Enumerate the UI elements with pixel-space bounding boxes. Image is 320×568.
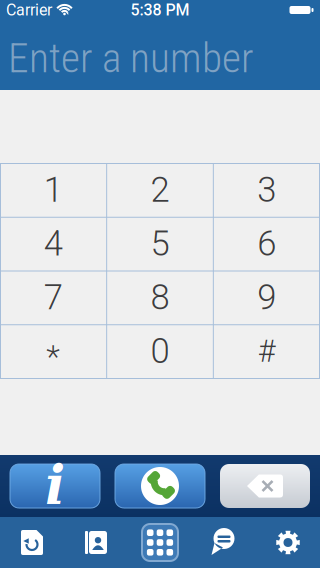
- button[interactable]: Recents: [0, 517, 64, 568]
- staticText: 5:38 PM: [130, 1, 189, 19]
- button[interactable]: 9: [214, 271, 320, 324]
- button[interactable]: 8: [107, 271, 213, 324]
- button[interactable]: Keypad: [128, 517, 192, 568]
- staticText: Carrier: [6, 1, 52, 19]
- staticText: 9: [257, 277, 276, 318]
- button[interactable]: Contacts: [64, 517, 128, 568]
- button[interactable]: Settings: [256, 517, 320, 568]
- button[interactable]: 3: [214, 163, 320, 216]
- staticText: *: [46, 337, 60, 375]
- staticText: 5: [150, 223, 169, 264]
- button[interactable]: Delete: [220, 464, 310, 508]
- staticText: #: [258, 333, 276, 369]
- staticText: 6: [257, 223, 276, 264]
- button[interactable]: Info: [10, 464, 100, 508]
- button[interactable]: 6: [214, 217, 320, 270]
- staticText: 0: [150, 331, 169, 371]
- staticText: 7: [44, 277, 63, 318]
- staticText: 2: [150, 170, 169, 210]
- button[interactable]: Messages: [192, 517, 256, 568]
- button[interactable]: 4: [0, 217, 106, 270]
- button[interactable]: #: [214, 325, 320, 378]
- button[interactable]: 1: [0, 163, 106, 216]
- button[interactable]: Call: [115, 464, 205, 508]
- staticText: 8: [150, 277, 169, 318]
- staticText: 1: [44, 170, 63, 210]
- staticText: Enter a number: [8, 34, 254, 82]
- staticText: i: [45, 454, 65, 516]
- button[interactable]: 2: [107, 163, 213, 216]
- staticText: 3: [257, 170, 276, 210]
- button[interactable]: 0: [107, 325, 213, 378]
- button[interactable]: *: [0, 325, 106, 378]
- button[interactable]: 5: [107, 217, 213, 270]
- staticText: 4: [44, 223, 63, 264]
- button[interactable]: 7: [0, 271, 106, 324]
